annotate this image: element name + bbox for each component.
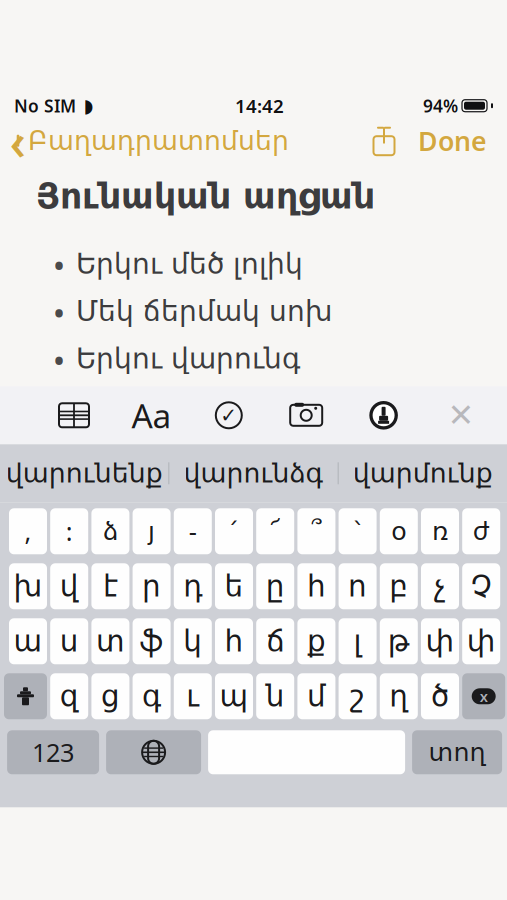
- button[interactable]: -: [174, 508, 212, 554]
- button[interactable]: փ: [462, 618, 500, 664]
- staticText: շ: [350, 680, 365, 713]
- staticText: ը: [266, 570, 285, 603]
- button[interactable]: ճ: [256, 618, 294, 664]
- button[interactable]: զ: [50, 673, 88, 719]
- staticText: լ: [354, 625, 362, 658]
- button[interactable]: Չ: [462, 563, 500, 609]
- button[interactable]: ո: [339, 563, 377, 609]
- button[interactable]: բ: [380, 563, 418, 609]
- button[interactable]: վ: [50, 563, 88, 609]
- button[interactable]: ս: [50, 618, 88, 664]
- button[interactable]: ռ: [421, 508, 459, 554]
- button[interactable]: մ: [297, 673, 335, 719]
- button[interactable]: Next keyboard: [106, 730, 201, 774]
- button[interactable]: ց: [91, 673, 129, 719]
- button[interactable]: վարմունք: [339, 444, 507, 502]
- button[interactable]: ը: [256, 563, 294, 609]
- button[interactable]: է: [91, 563, 129, 609]
- button[interactable]: հ: [297, 563, 335, 609]
- button[interactable]: շ: [339, 673, 377, 719]
- staticText: պ: [219, 680, 248, 713]
- staticText: ՝: [355, 517, 361, 546]
- button[interactable]: ձ: [91, 508, 129, 554]
- button[interactable]: Checklist: [207, 395, 251, 435]
- staticText: x: [480, 687, 488, 706]
- staticText: Երկու մեծ լոլիկ: [76, 248, 303, 280]
- button[interactable]: ՞: [297, 508, 335, 554]
- staticText: ա: [13, 625, 42, 658]
- staticText: ե: [224, 570, 243, 603]
- staticText: ՛: [231, 517, 237, 546]
- button[interactable]: վարունենք: [0, 444, 168, 502]
- staticText: հ: [307, 570, 326, 603]
- staticText: թ: [388, 625, 410, 658]
- button[interactable]: Hide keyboard: [439, 395, 483, 435]
- staticText: կ: [183, 625, 202, 658]
- button[interactable]: յ: [133, 508, 171, 554]
- button[interactable]: ւ: [174, 673, 212, 719]
- staticText: •: [54, 343, 64, 378]
- button[interactable]: թ: [380, 618, 418, 664]
- button[interactable]: ֆ: [133, 618, 171, 664]
- button[interactable]: գ: [133, 673, 171, 719]
- staticText: -: [189, 514, 197, 548]
- button[interactable]: հ: [215, 618, 253, 664]
- staticText: յ: [148, 517, 155, 546]
- button[interactable]: ‹: [0, 119, 289, 163]
- button[interactable]: Format: [129, 395, 173, 435]
- button[interactable]: օ: [380, 508, 418, 554]
- staticText: ղ: [389, 680, 408, 713]
- button[interactable]: ծ: [421, 673, 459, 719]
- staticText: ‹: [9, 107, 26, 174]
- staticText: վարունենք: [6, 458, 163, 488]
- staticText: Մեկ ճերմակ սոխ: [76, 295, 332, 327]
- staticText: փ: [467, 625, 496, 658]
- button[interactable]: տ: [91, 618, 129, 664]
- staticText: ,: [24, 514, 31, 548]
- button[interactable]: լ: [339, 618, 377, 664]
- button[interactable]: ա: [9, 618, 47, 664]
- button[interactable]: կ: [174, 618, 212, 664]
- button[interactable]: Table: [52, 395, 96, 435]
- button[interactable]: 123: [7, 730, 99, 774]
- button[interactable]: դ: [174, 563, 212, 609]
- staticText: տող: [429, 738, 486, 767]
- staticText: վարմունք: [353, 458, 493, 488]
- button[interactable]: պ: [215, 673, 253, 719]
- button[interactable]: :: [50, 508, 88, 554]
- button[interactable]: ղ: [380, 673, 418, 719]
- button[interactable]: վարունձգ: [169, 444, 338, 502]
- button[interactable]: տող: [412, 730, 502, 774]
- button[interactable]: ,: [9, 508, 47, 554]
- button[interactable]: ՛: [215, 508, 253, 554]
- button[interactable]: Camera: [284, 395, 328, 435]
- button[interactable]: Markup: [362, 395, 406, 435]
- button[interactable]: Shift: [4, 673, 47, 719]
- button[interactable]: ՜: [256, 508, 294, 554]
- button[interactable]: Done: [406, 119, 499, 163]
- staticText: ճ: [266, 625, 284, 658]
- staticText: ռ: [432, 517, 448, 546]
- button[interactable]: խ: [9, 563, 47, 609]
- button[interactable]: Share: [362, 119, 406, 163]
- staticText: ✕: [447, 397, 474, 433]
- button[interactable]: ր: [133, 563, 171, 609]
- staticText: տ: [96, 625, 125, 658]
- button[interactable]: ք: [297, 618, 335, 664]
- button[interactable]: ն: [256, 673, 294, 719]
- staticText: ✓: [220, 404, 237, 427]
- button[interactable]: չ: [421, 563, 459, 609]
- staticText: Բաղադրատոմսեր: [28, 126, 289, 156]
- button[interactable]: ՝: [339, 508, 377, 554]
- button[interactable]: փ: [421, 618, 459, 664]
- staticText: Երկու վարունգ: [76, 343, 300, 375]
- staticText: վարունձգ: [183, 458, 323, 488]
- staticText: դ: [183, 570, 202, 603]
- staticText: 94%: [423, 94, 458, 117]
- staticText: Յունական աղցան: [36, 177, 375, 216]
- button[interactable]: ե: [215, 563, 253, 609]
- button[interactable]: ժ: [462, 508, 500, 554]
- staticText: խ: [13, 570, 42, 603]
- button[interactable]: Delete: [462, 673, 505, 719]
